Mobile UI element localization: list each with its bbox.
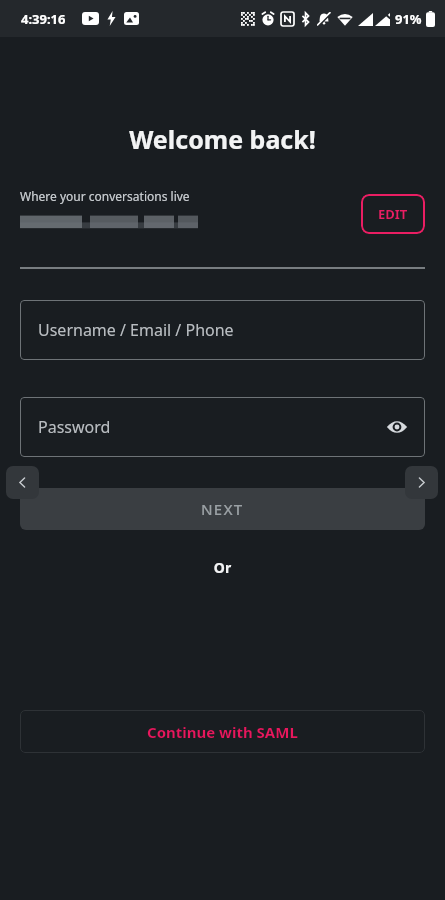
- staticText: Password: [38, 416, 111, 438]
- staticText: EDIT: [378, 205, 408, 223]
- staticText: Welcome back!: [0, 122, 445, 156]
- staticText: Username / Email / Phone: [38, 319, 234, 341]
- button[interactable]: NEXT: [20, 488, 425, 530]
- button[interactable]: Show password: [383, 413, 411, 441]
- button[interactable]: Previous: [6, 466, 39, 499]
- button[interactable]: Username / Email / Phone: [20, 300, 425, 360]
- button[interactable]: Next: [405, 466, 438, 499]
- button[interactable]: Continue with SAML: [20, 710, 425, 753]
- staticText: Or: [0, 558, 445, 577]
- button[interactable]: Password: [20, 397, 425, 457]
- button[interactable]: EDIT: [361, 194, 425, 234]
- staticText: Where your conversations live: [20, 188, 190, 204]
- staticText: NEXT: [201, 499, 244, 519]
- staticText: Continue with SAML: [147, 722, 298, 742]
- staticText: 4:39:16: [21, 10, 66, 28]
- staticText: 91%: [395, 10, 422, 28]
